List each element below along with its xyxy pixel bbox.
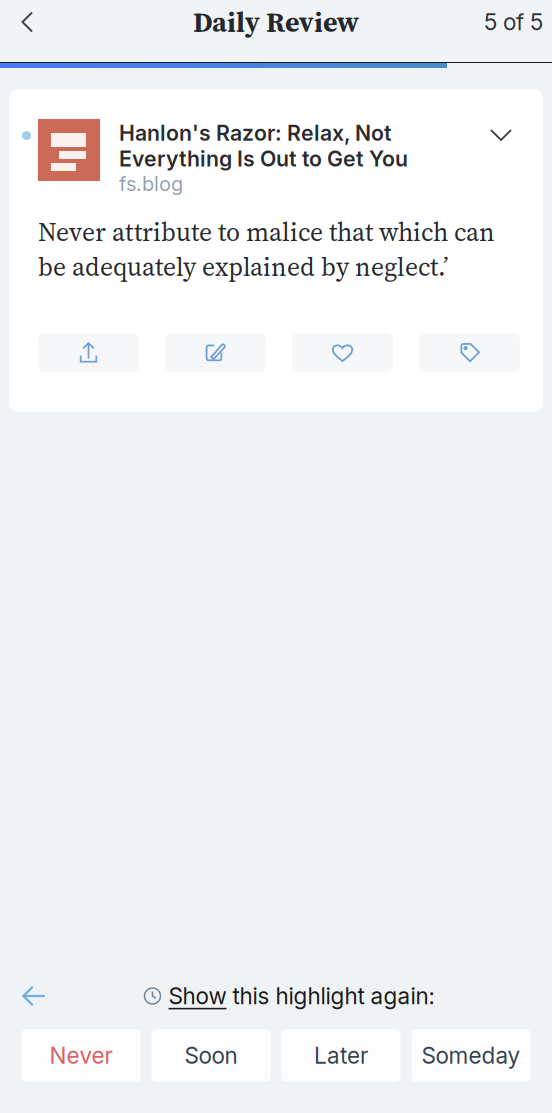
staticText: 5 of 5	[484, 8, 543, 36]
button[interactable]: Show this highlight again:	[168, 983, 434, 1009]
button[interactable]: Never	[21, 1029, 140, 1082]
staticText: Show this highlight again:	[168, 983, 434, 1009]
button[interactable]: Soon	[151, 1029, 270, 1082]
button[interactable]: Favorite	[292, 333, 393, 372]
staticText: Soon	[184, 1042, 237, 1069]
staticText: Never	[49, 1042, 112, 1069]
staticText: fs.blog	[119, 172, 183, 196]
staticText: Later	[314, 1042, 368, 1069]
button[interactable]: Later	[281, 1029, 400, 1082]
staticText: Someday	[421, 1042, 520, 1069]
button[interactable]: Back	[6, 0, 48, 44]
staticText: Hanlon's Razor: Relax, Not Everything Is…	[119, 120, 408, 172]
button[interactable]: Collapse	[479, 119, 523, 151]
button[interactable]: Edit	[165, 333, 266, 372]
button[interactable]: 5 of 5	[484, 0, 552, 44]
button[interactable]: Tag	[419, 333, 520, 372]
button[interactable]: Previous highlight	[12, 976, 56, 1016]
button[interactable]: Someday	[411, 1029, 530, 1082]
staticText: Daily Review	[193, 3, 359, 41]
staticText: Never attribute to malice that which can…	[38, 215, 495, 284]
button[interactable]: Share	[38, 333, 139, 372]
